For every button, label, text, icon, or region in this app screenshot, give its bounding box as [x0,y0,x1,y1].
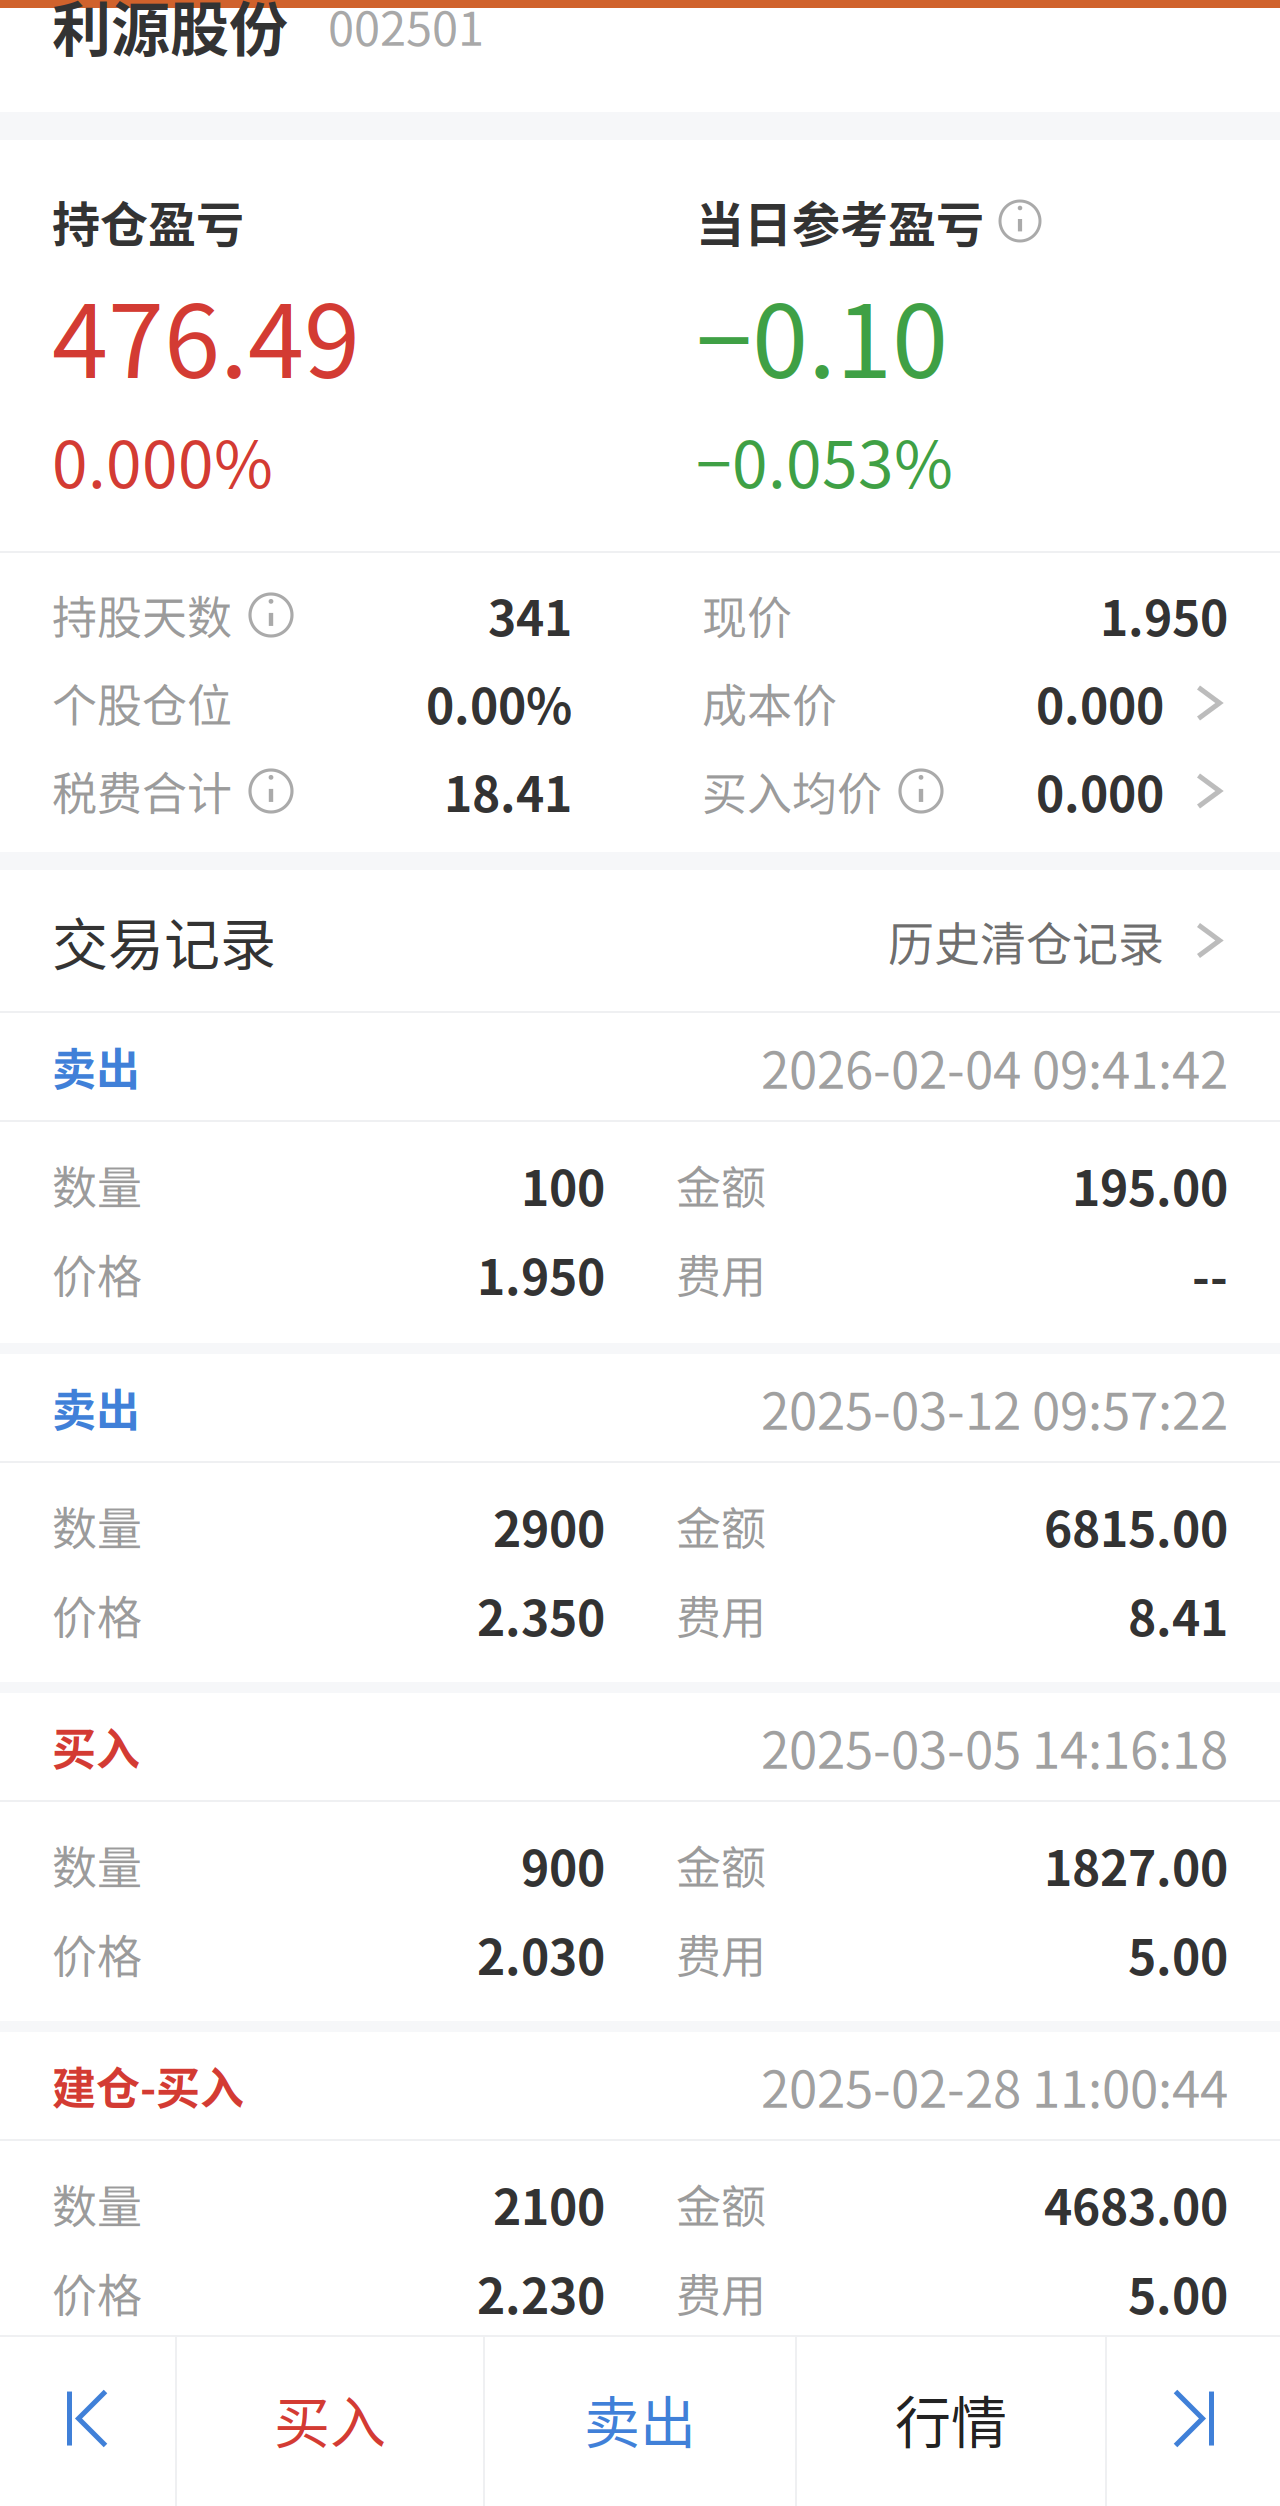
button[interactable]: 卖出 [0,1354,1280,1461]
staticText: 数量 [52,1832,142,1898]
staticText: 金额 [676,2171,766,2237]
staticText: 476.49 [52,261,360,407]
button[interactable]: Last page [1107,2337,1280,2506]
staticText: 数量 [52,1493,142,1559]
staticText: 费用 [676,1241,766,1307]
staticText: 341 [488,580,572,650]
staticText: 金额 [676,1493,766,1559]
staticText: 2025-03-05 14:16:18 [761,1710,1228,1783]
staticText: 0.000% [52,414,273,506]
button[interactable]: First page [0,2337,175,2506]
button[interactable]: 买入 [0,1693,1280,1800]
button[interactable]: 历史清仓记录 [888,907,1228,974]
staticText: 5.00 [1128,1919,1228,1989]
staticText: 费用 [676,1582,766,1648]
staticText: 6815.00 [1044,1491,1228,1561]
staticText: 价格 [52,1582,142,1648]
staticText: 个股仓位 [52,670,232,736]
staticText: -- [1192,1239,1228,1309]
staticText: 2.030 [477,1919,605,1989]
staticText: 2.350 [477,1580,605,1650]
button[interactable]: 买入均价 [702,761,1228,821]
button[interactable]: 卖出 [0,1013,1280,1120]
staticText: 100 [521,1150,605,1220]
staticText: 数量 [52,2171,142,2237]
staticText: 1.950 [1100,580,1228,650]
staticText: 8.41 [1128,1580,1228,1650]
staticText: 买入 [52,1715,140,1778]
button[interactable]: 成本价 [702,673,1228,733]
staticText: 当日参考盈亏 [696,186,984,256]
staticText: 现价 [702,582,792,648]
staticText: 0.000 [1036,756,1164,826]
staticText: 0.000 [1036,668,1164,738]
staticText: 2025-03-12 09:57:22 [761,1371,1228,1444]
staticText: 0.00% [426,668,572,738]
staticText: 历史清仓记录 [888,907,1164,974]
staticText: 费用 [676,1921,766,1987]
staticText: 税费合计 [52,758,232,824]
staticText: −0.10 [696,261,948,407]
staticText: 900 [521,1830,605,1900]
staticText: 金额 [676,1832,766,1898]
staticText: 002501 [328,0,484,59]
staticText: 195.00 [1072,1150,1228,1220]
staticText: 18.41 [444,756,572,826]
staticText: 4683.00 [1044,2169,1228,2239]
staticText: 金额 [676,1152,766,1218]
staticText: 2.230 [477,2258,605,2328]
staticText: 2025-02-28 11:00:44 [761,2049,1228,2122]
staticText: 持仓盈亏 [52,186,244,256]
staticText: 价格 [52,2260,142,2326]
staticText: 买入均价 [702,758,882,824]
staticText: 1827.00 [1044,1830,1228,1900]
staticText: 5.00 [1128,2258,1228,2328]
staticText: 交易记录 [52,900,276,981]
staticText: 1.950 [477,1239,605,1309]
button[interactable]: 行情 [797,2337,1105,2506]
staticText: 卖出 [52,1376,140,1439]
button[interactable]: 买入 [177,2337,483,2506]
button[interactable]: 建仓-买入 [0,2032,1280,2139]
staticText: 行情 [895,2378,1007,2459]
staticText: −0.053% [696,414,953,506]
staticText: 费用 [676,2260,766,2326]
staticText: 数量 [52,1152,142,1218]
staticText: 成本价 [702,670,837,736]
staticText: 买入 [274,2378,386,2459]
staticText: 卖出 [584,2378,696,2459]
staticText: 卖出 [52,1035,140,1098]
staticText: 2900 [493,1491,605,1561]
staticText: 价格 [52,1241,142,1307]
staticText: 建仓-买入 [52,2054,244,2117]
staticText: 2026-02-04 09:41:42 [761,1030,1228,1103]
staticText: 持股天数 [52,582,232,648]
button[interactable]: 卖出 [485,2337,795,2506]
staticText: 2100 [493,2169,605,2239]
staticText: 利源股份 [52,0,288,68]
staticText: 价格 [52,1921,142,1987]
